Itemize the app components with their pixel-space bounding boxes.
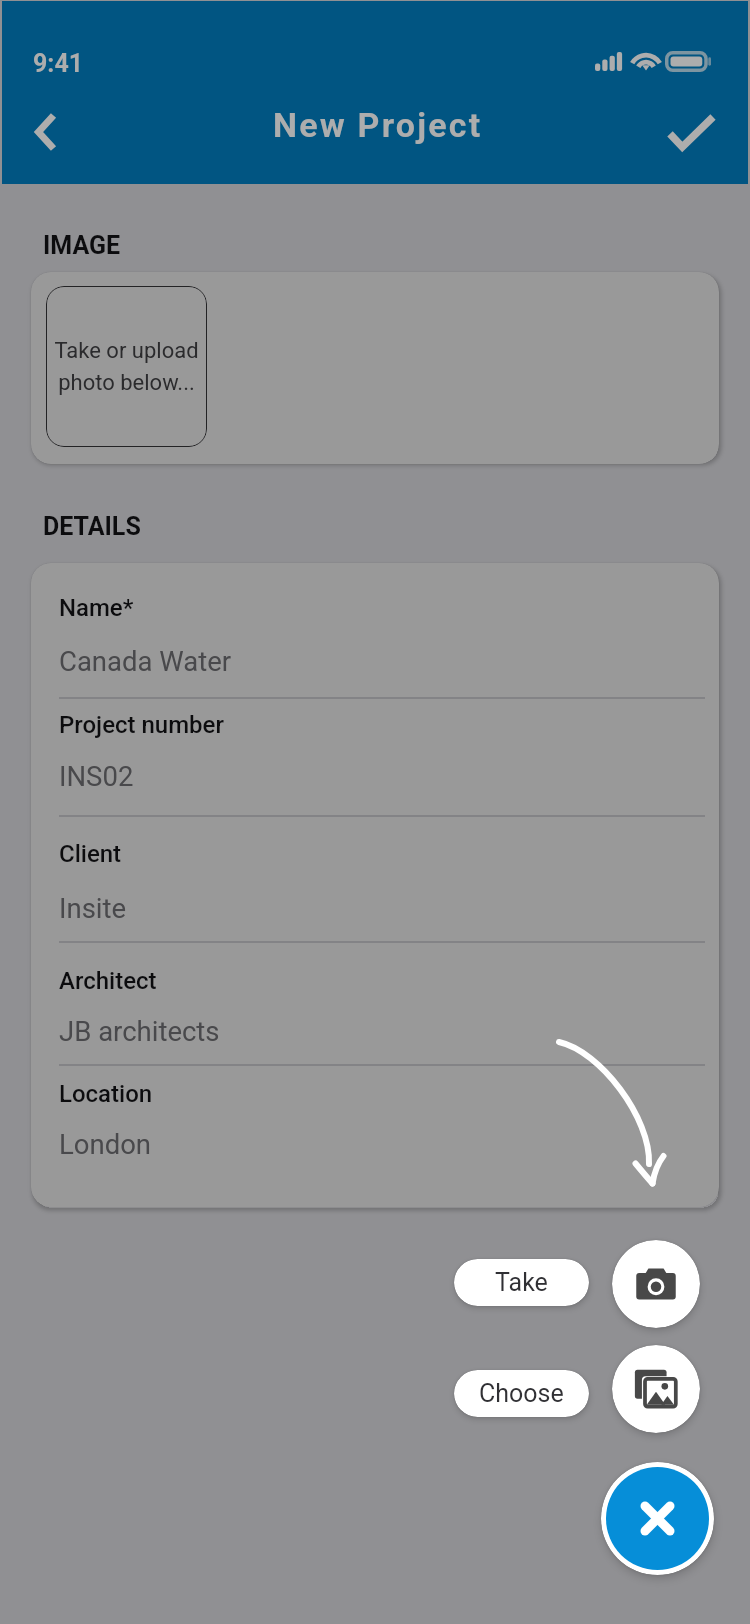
staticText: Location [59,1080,153,1108]
staticText: Project number [59,711,224,739]
staticText: IMAGE [43,231,121,260]
staticText: Insite [59,892,127,924]
staticText: JB architects [59,1015,220,1047]
staticText: Client [59,840,122,868]
staticText: New Project [273,105,483,145]
staticText: Architect [59,967,157,995]
staticText: 9:41 [33,49,84,78]
button[interactable] [31,594,719,698]
button[interactable] [31,967,719,1065]
button[interactable]: Save [645,86,737,178]
staticText: Take or upload photo below... [54,338,199,396]
button[interactable] [31,711,719,816]
button[interactable]: Take photo [612,1240,700,1328]
button[interactable]: Dismiss [0,0,750,1624]
button[interactable]: Choose [454,1370,589,1417]
button[interactable]: Take [454,1259,589,1306]
staticText: Canada Water [59,645,232,677]
button[interactable]: Take or upload photo below... [46,286,207,447]
button[interactable]: Choose from gallery [612,1345,700,1433]
button[interactable]: Back [0,86,92,178]
staticText: Take [495,1268,548,1297]
staticText: London [59,1128,152,1160]
button[interactable] [31,840,719,942]
staticText: DETAILS [43,512,141,541]
staticText: Choose [479,1379,564,1408]
button[interactable] [31,1080,719,1207]
staticText: INS02 [59,760,134,792]
staticText: Name* [59,594,134,622]
button[interactable]: Close menu [606,1467,709,1570]
